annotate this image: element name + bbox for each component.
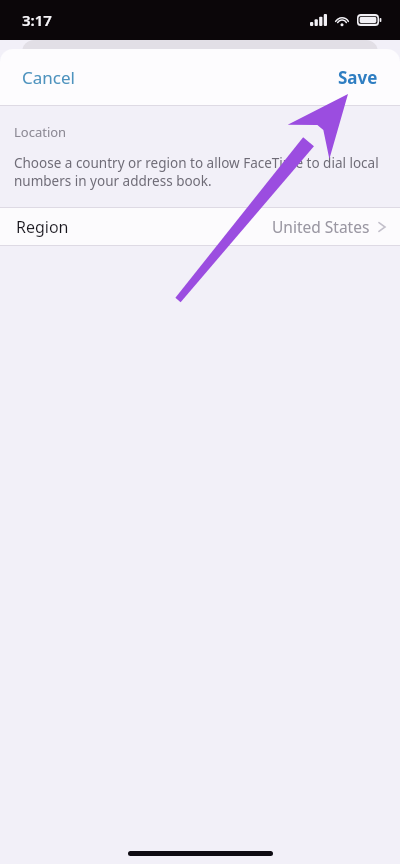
- button[interactable]: Region: [0, 208, 400, 245]
- button[interactable]: Save: [316, 57, 400, 98]
- staticText: Cancel: [22, 66, 75, 89]
- other: Home indicator: [128, 851, 273, 856]
- staticText: 3:17: [22, 10, 52, 30]
- staticText: United States: [272, 216, 370, 237]
- staticText: Choose a country or region to allow Face…: [14, 154, 379, 190]
- staticText: Location: [14, 123, 67, 141]
- staticText: Region: [16, 216, 69, 238]
- button[interactable]: Cancel: [0, 57, 97, 98]
- staticText: Save: [338, 66, 378, 89]
